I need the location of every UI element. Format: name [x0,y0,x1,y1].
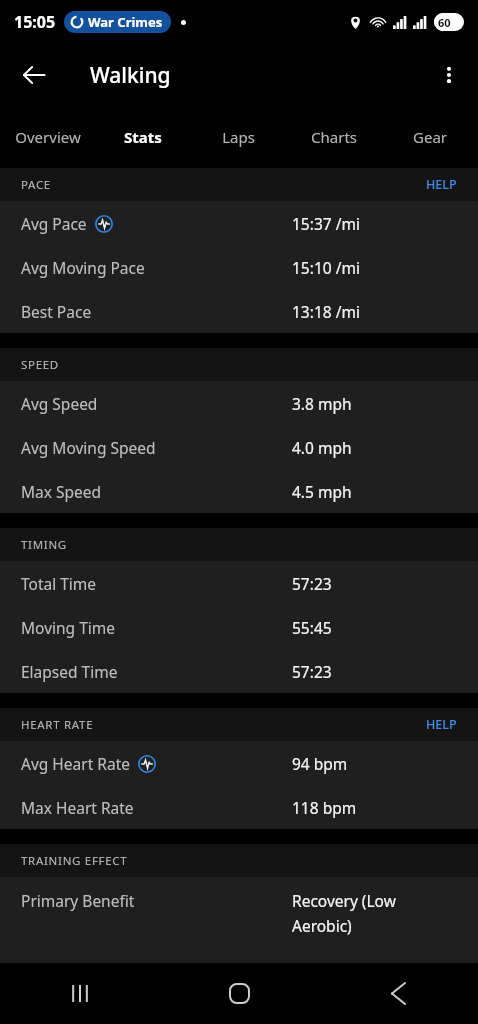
staticText: 4.5 mph [292,481,352,502]
button[interactable]: Avg Pace [0,201,478,245]
staticText: Avg Heart Rate [21,753,130,774]
staticText: Total Time [21,573,97,594]
button[interactable]: Total Time [0,561,478,605]
button[interactable]: Max Speed [0,469,478,513]
button[interactable]: Back [12,53,56,97]
staticText: 60 [438,15,451,30]
staticText: SPEED [21,357,59,373]
button[interactable]: HELP [405,708,478,741]
staticText: Elapsed Time [21,661,118,682]
button[interactable]: Laps [190,106,286,158]
staticText: 15:10 /mi [292,257,360,278]
staticText: Primary Benefit [21,890,135,911]
staticText: War Crimes [88,13,163,31]
button[interactable]: Avg Moving Pace [0,245,478,289]
staticText: Laps [222,127,255,147]
staticText: PACE [21,177,51,193]
staticText: 15:37 /mi [292,213,360,234]
button[interactable]: Recents [0,963,160,1024]
staticText: 4.0 mph [292,437,352,458]
button[interactable]: Elapsed Time [0,649,478,693]
button[interactable]: Back [319,963,478,1024]
button[interactable]: Avg Heart Rate [0,741,478,785]
staticText: HEART RATE [21,717,94,733]
staticText: Max Heart Rate [21,797,134,818]
staticText: 55:45 [292,617,332,638]
staticText: Avg Moving Pace [21,257,145,278]
staticText: 57:23 [292,661,332,682]
staticText: Avg Moving Speed [21,437,156,458]
staticText: Overview [15,127,81,147]
staticText: HELP [426,176,457,193]
button[interactable]: Avg Speed [0,381,478,425]
button[interactable]: Gear [382,106,478,158]
staticText: Recovery (Low Aerobic) [292,890,412,937]
staticText: TIMING [21,537,67,553]
staticText: HELP [426,716,457,733]
button[interactable]: Stats [95,106,190,158]
staticText: 15:05 [14,11,56,33]
button[interactable]: Overview [0,106,95,158]
staticText: Avg Speed [21,393,98,414]
staticText: Avg Pace [21,213,87,234]
button[interactable]: Charts [286,106,382,158]
staticText: Max Speed [21,481,102,502]
staticText: 13:18 /mi [292,301,360,322]
staticText: Walking [90,61,171,90]
button[interactable]: Avg Moving Speed [0,425,478,469]
staticText: 57:23 [292,573,332,594]
staticText: 118 bpm [292,797,357,818]
staticText: 3.8 mph [292,393,352,414]
button[interactable]: Best Pace [0,289,478,333]
staticText: Best Pace [21,301,92,322]
staticText: Stats [124,127,162,147]
button[interactable]: Home [160,963,319,1024]
staticText: TRAINING EFFECT [21,853,128,869]
button[interactable]: Max Heart Rate [0,785,478,829]
button[interactable]: Moving Time [0,605,478,649]
button[interactable]: HELP [405,168,478,201]
staticText: Charts [311,127,357,147]
staticText: 94 bpm [292,753,348,774]
button[interactable]: More options [427,53,471,97]
button[interactable]: Primary Benefit [0,877,478,963]
staticText: Moving Time [21,617,115,638]
staticText: Gear [413,127,447,147]
